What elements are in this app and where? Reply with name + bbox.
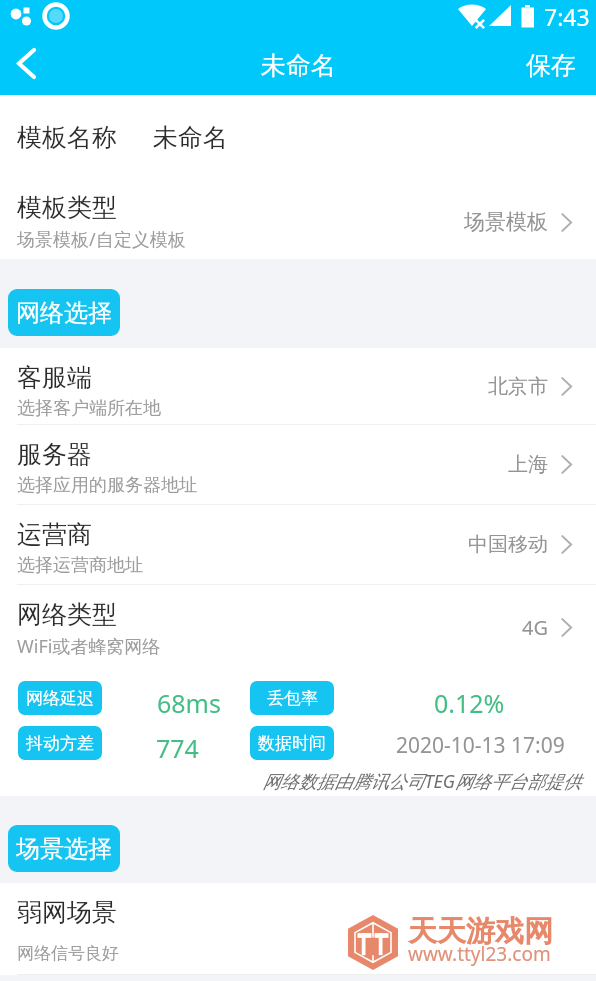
button[interactable]: 丢包率 bbox=[250, 681, 334, 715]
staticText: WiFi或者蜂窝网络 bbox=[17, 634, 161, 659]
staticText: 客服端 bbox=[17, 362, 92, 393]
staticText: 上海 bbox=[508, 452, 548, 477]
staticText: 模板名称 bbox=[17, 122, 117, 153]
staticText: 网络信号良好 bbox=[17, 943, 119, 964]
button[interactable]: 模板名称 bbox=[0, 95, 596, 180]
staticText: 抖动方差 bbox=[26, 733, 94, 754]
staticText: 场景选择 bbox=[16, 834, 112, 864]
staticText: 4G bbox=[522, 614, 548, 641]
button[interactable]: 场景选择 bbox=[8, 825, 120, 872]
staticText: 弱网场景 bbox=[17, 897, 117, 928]
staticText: 未命名 bbox=[261, 50, 336, 81]
button[interactable]: Back bbox=[0, 35, 53, 95]
staticText: 模板类型 bbox=[17, 192, 117, 223]
staticText: 场景模板/自定义模板 bbox=[17, 227, 186, 252]
button[interactable]: 网络选择 bbox=[8, 289, 120, 336]
button[interactable]: 数据时间 bbox=[250, 726, 334, 760]
staticText: 774 bbox=[156, 731, 199, 765]
staticText: 选择应用的服务器地址 bbox=[17, 474, 197, 497]
staticText: 68ms bbox=[157, 686, 221, 720]
staticText: 网络数据由腾讯公司TEG网络平台部提供 bbox=[0, 769, 581, 794]
staticText: 丢包率 bbox=[267, 688, 318, 709]
staticText: 数据时间 bbox=[258, 733, 326, 754]
staticText: 运营商 bbox=[17, 519, 92, 550]
staticText: 网络类型 bbox=[17, 599, 117, 630]
staticText: 7:43 bbox=[544, 1, 590, 32]
button[interactable]: 服务器 bbox=[0, 425, 596, 504]
button[interactable]: 客服端 bbox=[0, 348, 596, 424]
button[interactable]: 网络类型 bbox=[0, 585, 596, 669]
staticText: 选择运营商地址 bbox=[17, 554, 143, 577]
staticText: 网络延迟 bbox=[26, 688, 94, 709]
button[interactable]: 运营商 bbox=[0, 505, 596, 584]
staticText: 服务器 bbox=[17, 439, 92, 470]
staticText: 0.12% bbox=[434, 686, 505, 720]
staticText: 保存 bbox=[526, 50, 576, 81]
button[interactable]: 网络延迟 bbox=[18, 681, 102, 715]
staticText: 中国移动 bbox=[468, 532, 548, 557]
staticText: 未命名 bbox=[153, 122, 228, 153]
staticText: 北京市 bbox=[488, 374, 548, 399]
button[interactable]: 抖动方差 bbox=[18, 726, 102, 760]
staticText: 选择客户端所在地 bbox=[17, 397, 161, 420]
button[interactable]: 弱网场景 bbox=[0, 883, 596, 975]
staticText: 场景模板 bbox=[464, 209, 548, 235]
button[interactable]: 模板类型 bbox=[0, 180, 596, 259]
staticText: 天天游戏网 bbox=[408, 913, 553, 950]
staticText: 2020-10-13 17:09 bbox=[396, 731, 565, 760]
staticText: 网络选择 bbox=[16, 298, 112, 328]
staticText: www.ttyl23.com bbox=[408, 941, 551, 967]
button[interactable]: 保存 bbox=[506, 35, 596, 95]
